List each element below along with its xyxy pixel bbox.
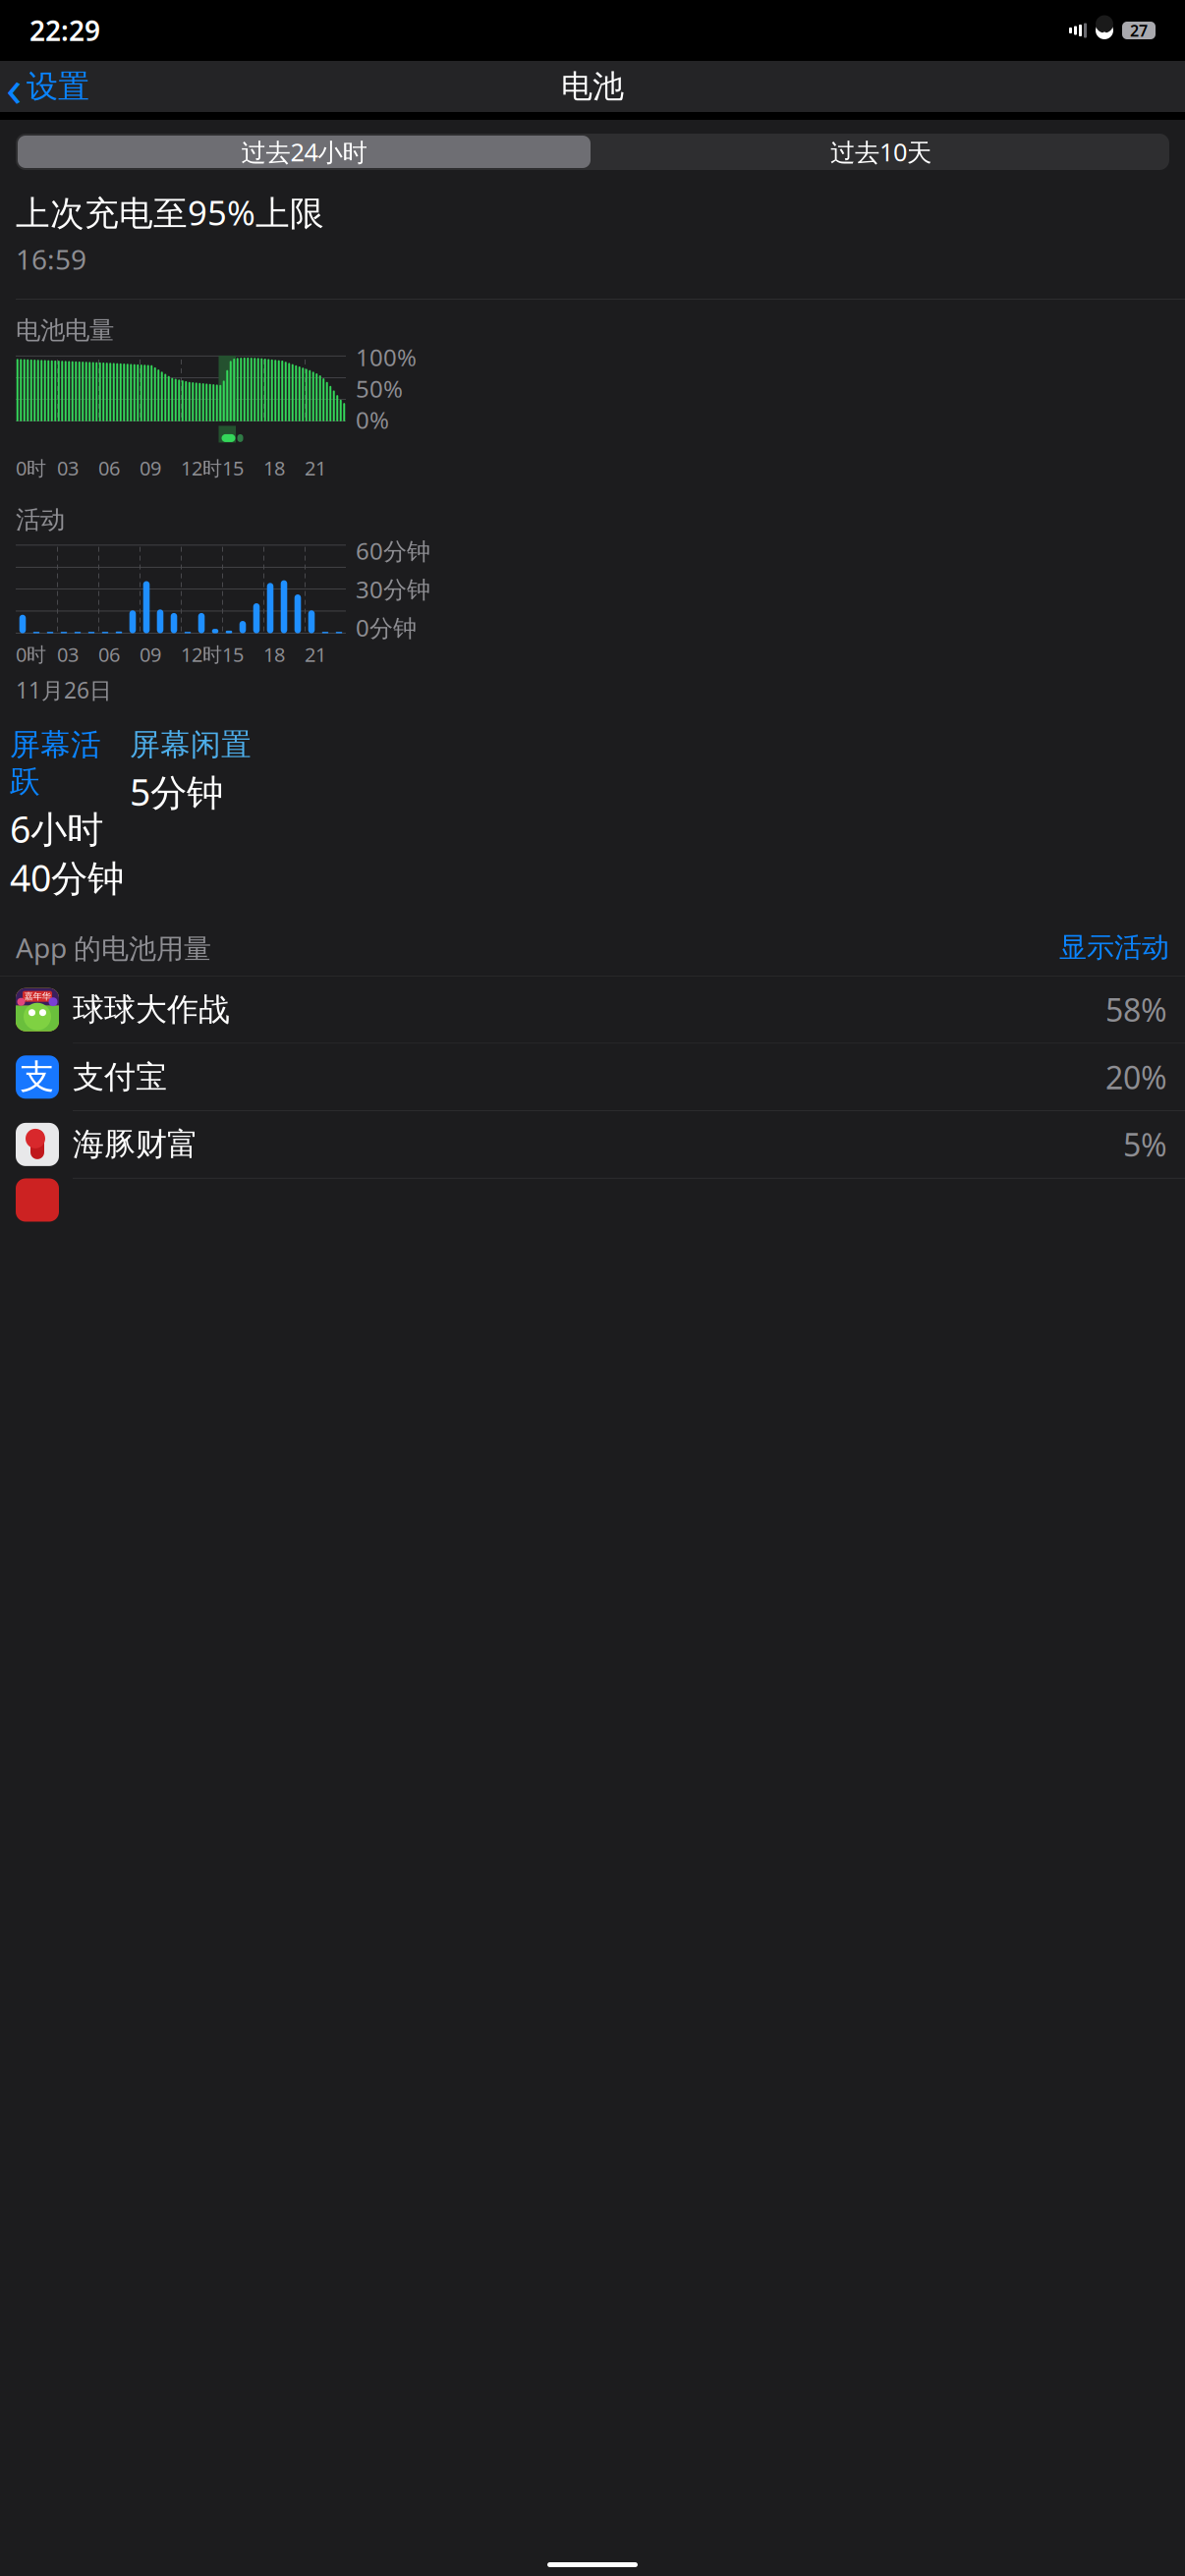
staticText: 设置	[27, 67, 89, 106]
staticText: 09	[140, 455, 161, 481]
staticText: 支	[20, 1056, 55, 1098]
staticText: 5分钟	[130, 767, 223, 816]
staticText: 0%	[356, 404, 389, 436]
staticText: 06	[98, 455, 120, 481]
staticText: 21	[305, 455, 326, 481]
staticText: ‹	[6, 52, 23, 121]
staticText: 03	[57, 641, 79, 667]
staticText: 50%	[356, 373, 403, 404]
button[interactable]: ‹	[0, 48, 89, 125]
button[interactable]: 嘉年华	[0, 976, 1185, 1044]
staticText: 上次充电至95%上限	[16, 190, 324, 235]
staticText: 22:29	[29, 12, 100, 49]
staticText: 海豚财富	[73, 1125, 198, 1164]
staticText: 0时	[16, 455, 46, 481]
staticText: 58%	[1105, 989, 1167, 1030]
staticText: 12时	[181, 641, 222, 667]
staticText: 过去24小时	[241, 135, 367, 168]
button[interactable]: 过去24小时	[16, 134, 592, 170]
staticText: 60分钟	[356, 535, 430, 566]
button[interactable]: 过去10天	[592, 134, 1169, 170]
staticText: 06	[98, 641, 120, 667]
staticText: 过去10天	[830, 135, 931, 168]
staticText: 嘉年华	[24, 991, 51, 1002]
staticText: 支付宝	[73, 1058, 167, 1096]
staticText: 11月26日	[16, 675, 112, 705]
staticText: 球球大作战	[73, 990, 230, 1029]
staticText: App 的电池用量	[16, 929, 211, 966]
button[interactable]: 显示活动	[1059, 931, 1169, 964]
staticText: 电池电量	[16, 315, 114, 346]
staticText: 18	[263, 641, 285, 667]
staticText: 03	[57, 455, 79, 481]
staticText: 15	[222, 641, 244, 667]
staticText: 15	[222, 455, 244, 481]
staticText: 20%	[1105, 1056, 1167, 1098]
staticText: 18	[263, 455, 285, 481]
button[interactable]: 海豚财富	[0, 1111, 1185, 1178]
staticText: 21	[305, 641, 326, 667]
staticText: 27	[1130, 20, 1148, 41]
staticText: 活动	[16, 504, 65, 535]
staticText: 6小时40分钟	[10, 804, 124, 902]
staticText: 0时	[16, 641, 46, 667]
staticText: 电池	[561, 67, 624, 106]
staticText: 16:59	[16, 241, 86, 277]
staticText: 100%	[356, 342, 417, 373]
staticText: 显示活动	[1059, 931, 1169, 964]
staticText: 0分钟	[356, 612, 417, 643]
staticText: 屏幕闲置	[130, 726, 252, 763]
staticText: 屏幕活跃	[10, 726, 101, 800]
staticText: 09	[140, 641, 161, 667]
button[interactable]: 支	[0, 1044, 1185, 1111]
staticText: 12时	[181, 455, 222, 481]
staticText: 30分钟	[356, 573, 430, 605]
staticText: 5%	[1123, 1124, 1167, 1165]
